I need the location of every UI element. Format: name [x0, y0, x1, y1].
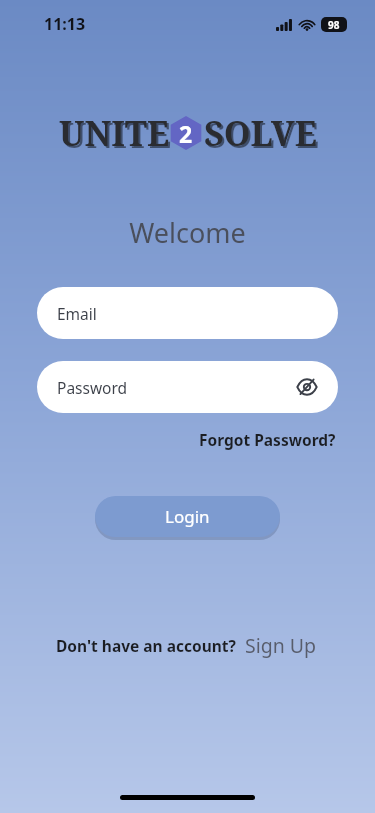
button[interactable]: Forgot Password? — [197, 425, 338, 454]
staticText: Email — [57, 303, 320, 324]
button[interactable]: Login — [95, 496, 280, 537]
staticText: SOLVE — [206, 112, 319, 158]
button[interactable]: Email — [37, 287, 338, 339]
staticText: UNITE — [61, 112, 172, 158]
staticText: 11:13 — [44, 13, 86, 35]
staticText: Password — [57, 377, 294, 398]
staticText: SOLVE — [204, 110, 317, 156]
button[interactable]: Sign Up — [243, 629, 319, 662]
staticText: Forgot Password? — [199, 429, 336, 450]
staticText: 98 — [328, 18, 340, 32]
staticText: Login — [165, 505, 210, 528]
staticText: Welcome — [0, 214, 375, 251]
button[interactable]: Show password — [294, 374, 320, 400]
button[interactable]: Password — [37, 361, 338, 413]
staticText: Sign Up — [245, 632, 317, 659]
staticText: Don't have an account? — [56, 635, 236, 656]
staticText: 2 — [179, 118, 193, 149]
staticText: UNITE — [59, 110, 170, 156]
